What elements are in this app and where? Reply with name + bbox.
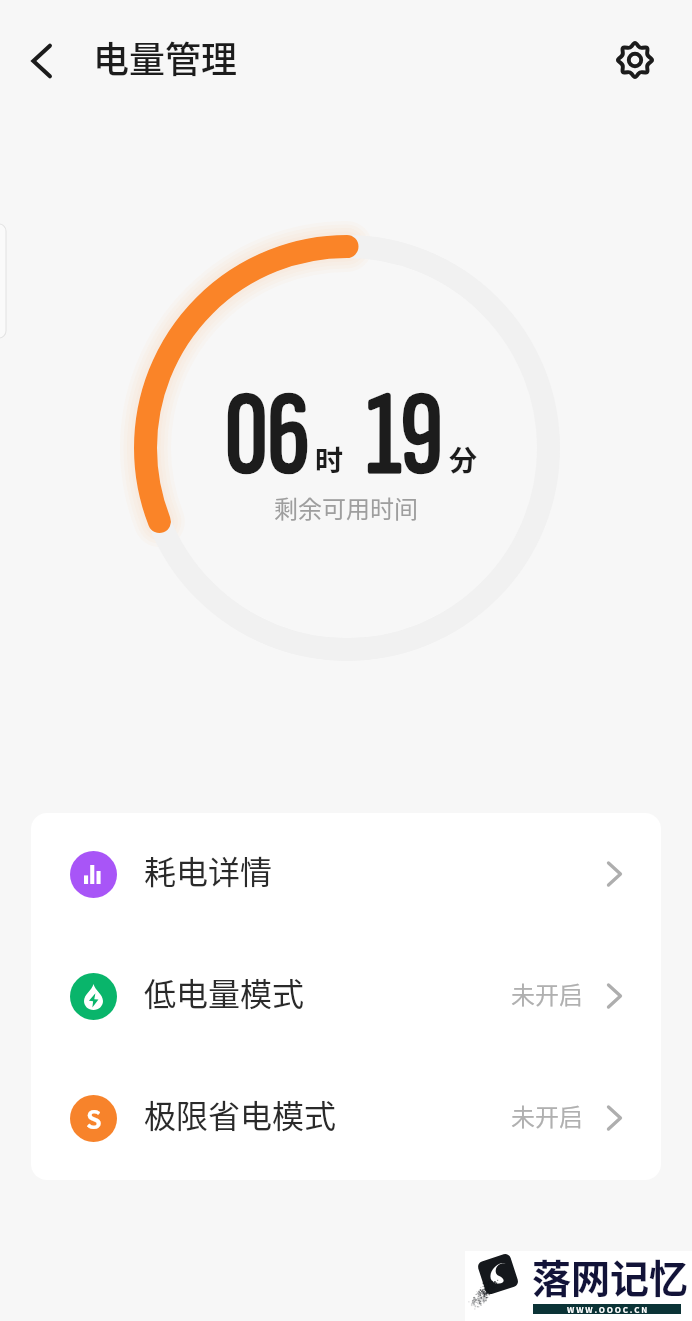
button[interactable]: 低电量模式 <box>31 935 661 1057</box>
staticText: 未开启 <box>511 976 583 1011</box>
button[interactable]: S <box>31 1057 661 1179</box>
button[interactable]: Settings <box>609 34 661 86</box>
staticText: S <box>86 1100 102 1136</box>
button[interactable]: 耗电详情 <box>31 813 661 935</box>
staticText: 极限省电模式 <box>144 1091 337 1137</box>
staticText: 电量管理 <box>93 31 238 83</box>
staticText: 未开启 <box>511 1098 583 1133</box>
staticText: 耗电详情 <box>144 847 273 893</box>
staticText: 低电量模式 <box>144 969 305 1015</box>
staticText: 时 <box>315 439 344 480</box>
staticText: W W W . O O O C . C N <box>567 1304 648 1314</box>
staticText: 落网记忆 <box>532 1248 689 1304</box>
staticText: 分 <box>449 439 478 480</box>
staticText: 19 <box>367 366 443 508</box>
staticText: 06 <box>225 366 310 508</box>
button[interactable]: Back <box>12 31 72 91</box>
staticText: 剩余可用时间 <box>0 490 692 525</box>
